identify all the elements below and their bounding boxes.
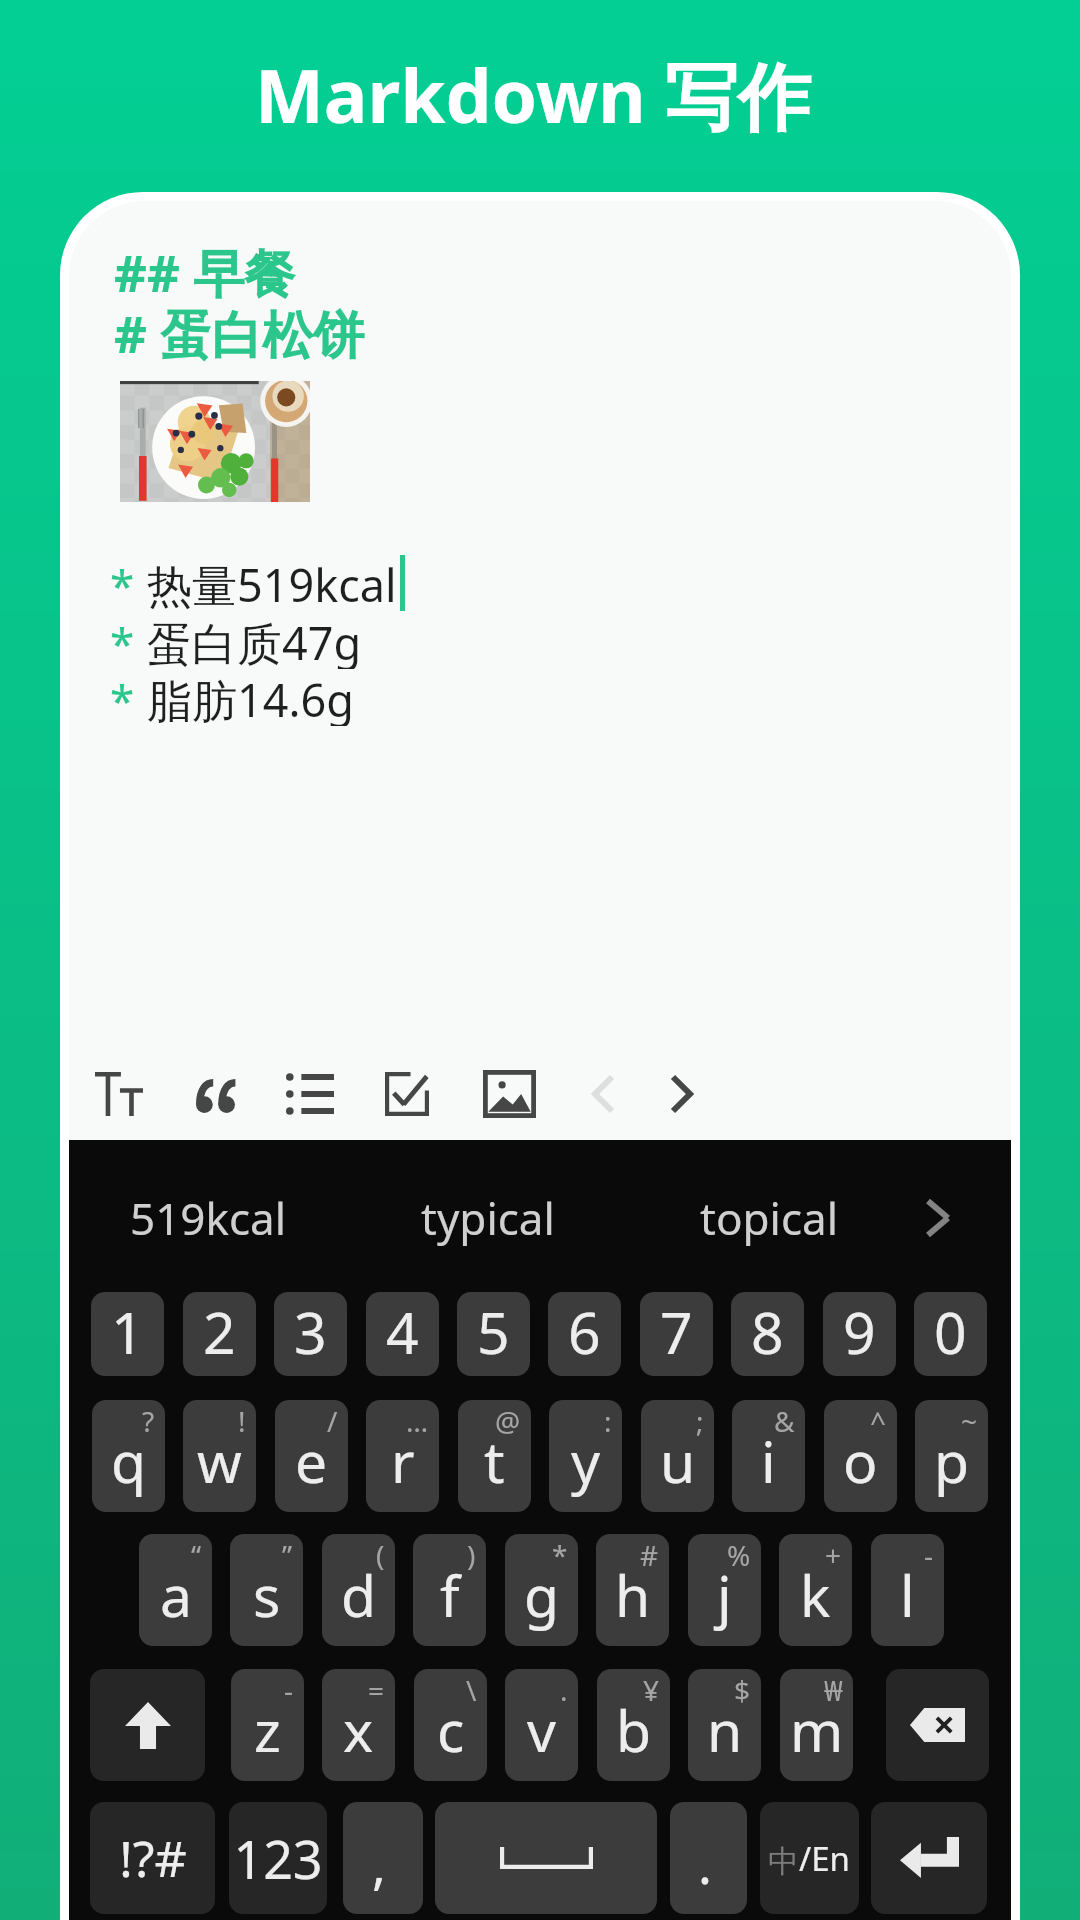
staticText: y xyxy=(571,1422,601,1500)
button[interactable]: Space xyxy=(435,1802,657,1914)
staticText: % xyxy=(727,1536,751,1574)
button[interactable]: Text format xyxy=(73,1048,165,1140)
staticText: 8 xyxy=(751,1293,784,1371)
staticText: 9 xyxy=(843,1293,876,1371)
staticText: 4 xyxy=(386,1293,419,1371)
button[interactable]: 7 xyxy=(640,1292,713,1376)
button[interactable]: * xyxy=(505,1534,578,1646)
button[interactable]: 6 xyxy=(548,1292,621,1376)
button[interactable]: ; xyxy=(641,1400,714,1512)
staticText: d xyxy=(341,1556,377,1634)
button[interactable]: 4 xyxy=(366,1292,439,1376)
staticText: q xyxy=(111,1422,147,1500)
button[interactable]: Bullet list xyxy=(264,1048,356,1140)
staticText: o xyxy=(843,1422,878,1500)
staticText: 2 xyxy=(203,1293,236,1371)
staticText: . xyxy=(698,1828,712,1899)
button[interactable]: topical xyxy=(639,1174,899,1262)
button[interactable]: Insert image xyxy=(463,1048,555,1140)
button[interactable]: / xyxy=(275,1400,348,1512)
staticText: !?# xyxy=(119,1824,187,1892)
button[interactable]: # xyxy=(596,1534,669,1646)
button[interactable]: … xyxy=(366,1400,439,1512)
staticText: … xyxy=(406,1402,429,1440)
button[interactable]: 519kcal xyxy=(78,1174,338,1262)
staticText: r xyxy=(391,1422,415,1500)
button[interactable]: ” xyxy=(230,1534,303,1646)
button[interactable]: typical xyxy=(358,1174,618,1262)
button[interactable]: 2 xyxy=(183,1292,256,1376)
button[interactable]: 8 xyxy=(731,1292,804,1376)
button[interactable]: !?# xyxy=(90,1802,215,1914)
staticText: + xyxy=(825,1536,842,1574)
staticText: 5 xyxy=(477,1293,510,1371)
staticText: $ xyxy=(734,1671,751,1709)
button[interactable]: 中 xyxy=(760,1802,859,1914)
staticText: / xyxy=(327,1402,338,1440)
button[interactable]: & xyxy=(732,1400,805,1512)
button[interactable]: Next xyxy=(635,1048,727,1140)
button[interactable]: Previous xyxy=(557,1048,649,1140)
staticText: l xyxy=(900,1556,915,1634)
button[interactable]: More suggestions xyxy=(902,1182,974,1254)
button[interactable]: Backspace xyxy=(886,1669,989,1781)
staticText: ; xyxy=(696,1402,704,1440)
staticText: t xyxy=(484,1422,505,1500)
button[interactable]: % xyxy=(688,1534,761,1646)
button[interactable]: : xyxy=(549,1400,622,1512)
button[interactable]: Enter xyxy=(871,1802,987,1914)
staticText: * xyxy=(552,1536,568,1574)
staticText: k xyxy=(800,1556,831,1634)
button[interactable]: 0 xyxy=(914,1292,987,1376)
staticText: ( xyxy=(376,1536,385,1574)
button[interactable]: Shift xyxy=(90,1669,205,1781)
button[interactable]: ¥ xyxy=(597,1669,670,1781)
staticText: 蛋白质47g xyxy=(147,612,362,669)
button[interactable]: ^ xyxy=(824,1400,897,1512)
staticText: i xyxy=(761,1422,776,1500)
button[interactable]: ! xyxy=(183,1400,256,1512)
staticText: ^ xyxy=(870,1402,887,1440)
staticText: 中 xyxy=(768,1842,799,1881)
button[interactable]: 5 xyxy=(457,1292,530,1376)
button[interactable]: , xyxy=(343,1802,423,1914)
button[interactable]: . xyxy=(505,1669,578,1781)
staticText: ¥ xyxy=(643,1671,660,1709)
button[interactable]: + xyxy=(779,1534,852,1646)
button[interactable]: “ xyxy=(139,1534,212,1646)
button[interactable]: ) xyxy=(413,1534,486,1646)
button[interactable]: 123 xyxy=(229,1802,327,1914)
button[interactable]: $ xyxy=(688,1669,761,1781)
button[interactable]: ₩ xyxy=(780,1669,853,1781)
button[interactable]: - xyxy=(871,1534,944,1646)
staticText: w xyxy=(197,1422,242,1500)
staticText: ” xyxy=(282,1536,293,1574)
staticText: 7 xyxy=(660,1293,693,1371)
staticText: * xyxy=(110,555,135,612)
button[interactable]: \ xyxy=(414,1669,487,1781)
staticText: 519kcal xyxy=(130,1188,287,1248)
button[interactable]: 3 xyxy=(274,1292,347,1376)
staticText: v xyxy=(527,1691,556,1769)
staticText: z xyxy=(254,1691,281,1769)
staticText: * xyxy=(110,670,135,727)
button[interactable]: - xyxy=(231,1669,304,1781)
button[interactable]: . xyxy=(670,1802,747,1914)
staticText: s xyxy=(253,1556,281,1634)
staticText: # xyxy=(640,1536,659,1574)
button[interactable]: ? xyxy=(92,1400,165,1512)
staticText: ! xyxy=(238,1402,246,1440)
button[interactable]: 9 xyxy=(823,1292,896,1376)
button[interactable]: 1 xyxy=(91,1292,164,1376)
button[interactable]: ~ xyxy=(915,1400,988,1512)
button[interactable]: @ xyxy=(458,1400,531,1512)
button[interactable]: Quote xyxy=(169,1050,261,1142)
button[interactable]: = xyxy=(322,1669,395,1781)
staticText: typical xyxy=(421,1188,555,1248)
staticText: : xyxy=(604,1402,612,1440)
staticText: 123 xyxy=(233,1823,323,1894)
staticText: /En xyxy=(799,1836,851,1881)
button[interactable]: Checklist xyxy=(361,1048,453,1140)
staticText: b xyxy=(616,1691,652,1769)
button[interactable]: ( xyxy=(322,1534,395,1646)
